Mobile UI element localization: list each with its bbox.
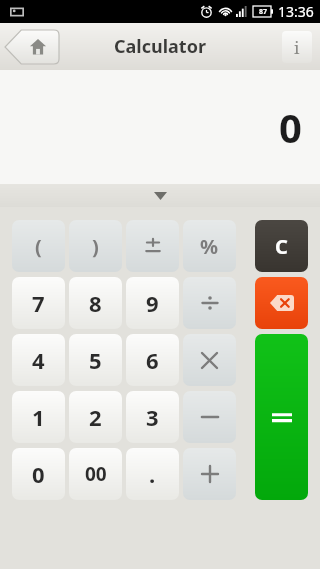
button[interactable]: 6 xyxy=(126,334,179,386)
staticText: 9 xyxy=(146,288,159,318)
button[interactable]: Equals xyxy=(255,334,308,500)
staticText: 7 xyxy=(32,288,45,318)
button[interactable] xyxy=(183,391,236,443)
button[interactable]: 0 xyxy=(12,448,65,500)
button[interactable]: 7 xyxy=(12,277,65,329)
staticText: ) xyxy=(92,233,99,260)
staticText: . xyxy=(149,459,156,489)
staticText: 0 xyxy=(32,459,45,489)
button[interactable]: 1 xyxy=(12,391,65,443)
staticText: 00 xyxy=(85,461,107,487)
button[interactable]: 2 xyxy=(69,391,122,443)
staticText: 6 xyxy=(146,345,159,375)
staticText: % xyxy=(200,233,219,260)
button[interactable] xyxy=(183,277,236,329)
button[interactable]: Info xyxy=(282,31,312,63)
staticText: Calculator xyxy=(114,34,206,59)
staticText: 1 xyxy=(32,402,45,432)
button[interactable]: % xyxy=(183,220,236,272)
staticText: 3 xyxy=(146,402,159,432)
staticText: 87 xyxy=(259,7,268,17)
button[interactable]: Delete xyxy=(255,277,308,329)
button[interactable]: ) xyxy=(69,220,122,272)
staticText: 13:36 xyxy=(278,2,314,21)
button[interactable]: 4 xyxy=(12,334,65,386)
button[interactable]: 9 xyxy=(126,277,179,329)
button[interactable] xyxy=(183,448,236,500)
button[interactable]: 5 xyxy=(69,334,122,386)
staticText: i xyxy=(294,36,300,59)
staticText: 2 xyxy=(89,402,102,432)
staticText: C xyxy=(275,233,288,260)
button[interactable]: 00 xyxy=(69,448,122,500)
button[interactable]: C xyxy=(255,220,308,272)
button[interactable]: . xyxy=(126,448,179,500)
button[interactable]: 3 xyxy=(126,391,179,443)
button[interactable]: ( xyxy=(12,220,65,272)
staticText: 5 xyxy=(89,345,102,375)
staticText: 4 xyxy=(32,345,45,375)
button[interactable] xyxy=(126,220,179,272)
staticText: ( xyxy=(35,233,42,260)
staticText: 8 xyxy=(89,288,102,318)
button[interactable]: 8 xyxy=(69,277,122,329)
staticText: 0 xyxy=(279,100,302,154)
button[interactable]: Home xyxy=(5,30,59,64)
button[interactable]: Expand history xyxy=(0,184,320,207)
button[interactable] xyxy=(183,334,236,386)
